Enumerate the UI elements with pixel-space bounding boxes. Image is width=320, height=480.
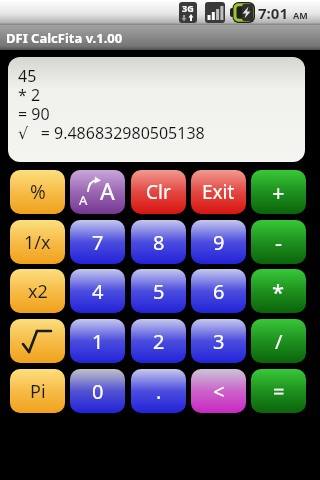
button[interactable]: 8 [131,220,186,264]
staticText: AM [293,9,308,21]
staticText: Exit [202,179,235,205]
staticText: 1 [92,328,104,355]
button[interactable]: . [131,369,186,413]
staticText: % [30,179,46,205]
staticText: < [213,378,225,405]
button[interactable]: 9 [191,220,246,264]
button[interactable]: 3 [191,319,246,363]
button[interactable]: 0 [70,369,125,413]
button[interactable]: - [251,220,306,264]
button[interactable]: 2 [131,319,186,363]
staticText: 1/x [24,230,51,255]
staticText: 3 [213,328,225,355]
staticText: - [275,227,283,257]
button[interactable]: = [251,369,306,413]
button[interactable] [10,319,65,363]
button[interactable]: A [70,170,125,214]
staticText: Pi [30,379,46,404]
button[interactable]: + [251,170,306,214]
staticText: A [79,191,88,209]
staticText: 3G [182,2,194,14]
button[interactable]: Pi [10,369,65,413]
button[interactable]: Clr [131,170,186,214]
staticText: / [275,328,283,355]
staticText: = [273,378,285,405]
staticText: 6 [213,278,225,305]
button[interactable]: 7 [70,220,125,264]
staticText: . [156,378,162,405]
staticText: 7 [92,229,104,256]
staticText: 0 [92,378,104,405]
button[interactable]: 6 [191,269,246,313]
staticText: 45 * 2 = 90 √ = 9.486832980505138 [18,65,205,144]
staticText: 2 [153,328,165,355]
staticText: Clr [146,179,171,205]
staticText: x2 [28,279,48,304]
staticText: 5 [153,278,165,305]
staticText: 4 [92,278,104,305]
button[interactable]: Exit [191,170,246,214]
button[interactable]: 1 [70,319,125,363]
button[interactable]: 5 [131,269,186,313]
staticText: * [272,276,285,306]
staticText: A [100,175,115,206]
button[interactable]: x2 [10,269,65,313]
button[interactable]: / [251,319,306,363]
button[interactable]: % [10,170,65,214]
staticText: 8 [153,229,165,256]
button[interactable]: 1/x [10,220,65,264]
staticText: 7:01 [258,3,288,23]
staticText: 9 [213,229,225,256]
button[interactable]: < [191,369,246,413]
button[interactable]: * [251,269,306,313]
staticText: + [272,177,285,207]
staticText: DFI CalcFita v.1.00 [6,29,123,47]
button[interactable]: 4 [70,269,125,313]
